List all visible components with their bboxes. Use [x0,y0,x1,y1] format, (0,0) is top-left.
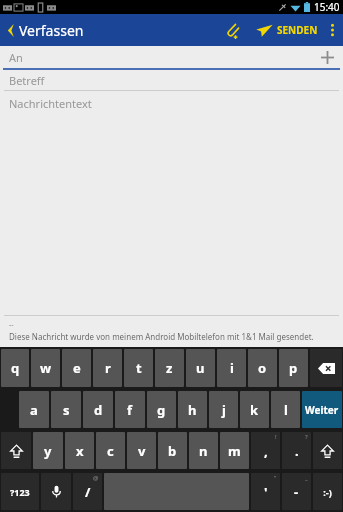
button[interactable]: z [155,349,184,387]
button[interactable]: s [51,391,81,428]
button[interactable]: Weiter [302,391,342,428]
staticText: o [258,359,267,377]
staticText: ! [275,433,277,441]
staticText: t [136,359,142,377]
staticText: . [295,442,299,460]
button[interactable]: r [93,349,122,387]
button[interactable]: f [115,391,145,428]
button[interactable]: " [251,473,280,510]
staticText: f [127,401,133,419]
staticText: p [289,359,298,377]
button[interactable]: Back [0,14,19,46]
staticText: z [166,359,173,377]
button[interactable]: @ [73,473,102,510]
button[interactable]: n [189,432,218,469]
button[interactable]: o [248,349,277,387]
button[interactable]: Nachrichtentext [0,91,343,347]
staticText: v [138,442,146,460]
button[interactable]: i [217,349,246,387]
staticText: x [76,442,84,460]
button[interactable]: m [220,432,249,469]
staticText: 15:40 [314,0,340,14]
staticText: h [188,401,197,419]
staticText: Nachrichtentext [9,96,92,111]
button[interactable]: x [65,432,94,469]
button[interactable]: y [33,432,63,469]
staticText: Verfassen [19,21,84,40]
button[interactable]: c [96,432,125,469]
staticText: - [294,483,299,501]
button[interactable]: t [124,349,153,387]
staticText: c [107,442,114,460]
button[interactable]: Shift [313,432,342,469]
staticText: Weiter [305,403,339,417]
staticText: / [85,483,91,501]
button[interactable]: q [1,349,29,387]
button[interactable]: v [127,432,156,469]
staticText: " [274,474,277,482]
button[interactable]: Add recipient [319,49,335,65]
staticText: l [284,401,288,419]
button[interactable]: d [83,391,113,428]
staticText: i [230,359,234,377]
button[interactable]: An [0,46,343,70]
staticText: Betreff [9,73,45,88]
staticText: An [9,50,23,65]
staticText: b [168,442,177,460]
button[interactable]: _ [282,473,311,510]
staticText: y [44,442,52,460]
button[interactable]: :-) [313,473,342,510]
staticText: d [94,401,103,419]
button[interactable]: Betreff [0,70,343,91]
staticText: _ [305,474,308,482]
button[interactable]: h [178,391,207,428]
staticText: :-) [323,486,332,498]
button[interactable]: ?123 [1,473,39,510]
staticText: , [264,442,268,460]
button[interactable]: Backspace [310,349,342,387]
staticText: w [40,359,52,377]
button[interactable]: SENDEN [250,14,324,46]
staticText: q [11,359,20,377]
staticText: @ [93,474,99,482]
button[interactable]: l [271,391,300,428]
staticText: s [63,401,70,419]
staticText: a [30,401,38,419]
staticText: e [73,359,81,377]
button[interactable]: g [147,391,176,428]
button[interactable]: k [240,391,269,428]
button[interactable]: j [209,391,238,428]
staticText: -- [9,320,14,330]
staticText: Diese Nachricht wurde von meinem Android… [9,331,314,342]
staticText: r [105,359,111,377]
button[interactable]: b [158,432,187,469]
staticText: k [250,401,259,419]
staticText: u [196,359,205,377]
button[interactable]: p [279,349,308,387]
staticText: ' [264,483,268,501]
button[interactable]: Voice input [41,473,71,510]
staticText: g [157,401,166,419]
button[interactable]: w [31,349,60,387]
button[interactable]: ! [251,432,280,469]
button[interactable]: Attach file [217,14,250,46]
button[interactable]: a [19,391,49,428]
staticText: ? [305,433,308,441]
staticText: m [228,442,241,460]
staticText: n [199,442,208,460]
staticText: j [222,401,226,419]
button[interactable]: ? [282,432,311,469]
staticText: SENDEN [277,23,318,37]
button[interactable]: u [186,349,215,387]
button[interactable]: Shift [1,432,31,469]
button[interactable]: More options [324,14,343,46]
button[interactable]: e [62,349,91,387]
staticText: ?123 [10,486,30,498]
